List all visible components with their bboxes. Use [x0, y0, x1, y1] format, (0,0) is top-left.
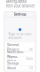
- button[interactable]: Storage: [5, 61, 34, 65]
- staticText: General: [7, 43, 19, 47]
- staticText: Things people are talking about: [5, 0, 34, 4]
- button[interactable]: Notifications: [5, 52, 34, 56]
- staticText: 1.0: [29, 66, 33, 70]
- button[interactable]: Appearance: [5, 56, 34, 61]
- staticText: from your browser: [5, 4, 34, 8]
- staticText: Sign in to your account: [8, 32, 31, 39]
- staticText: Auto: [26, 57, 33, 61]
- staticText: Notifications: [7, 50, 24, 58]
- button[interactable]: General: [5, 43, 34, 47]
- staticText: About: [7, 66, 16, 70]
- staticText: Appearance: [7, 55, 18, 62]
- button[interactable]: Privacy: [5, 47, 34, 51]
- staticText: Storage: [7, 61, 19, 65]
- staticText: Privacy: [7, 47, 19, 51]
- staticText: On: [29, 47, 33, 51]
- staticText: Settings: [13, 12, 26, 16]
- button[interactable]: About: [5, 66, 34, 70]
